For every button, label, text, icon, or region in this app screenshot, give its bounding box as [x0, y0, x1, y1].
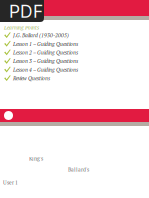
- staticText: Lesson 4 – Guiding Questions: [13, 66, 78, 73]
- staticText: Lesson 3 – Guiding Questions: [13, 58, 78, 65]
- staticText: User 1: [3, 179, 18, 186]
- staticText: Review Questions: [13, 75, 50, 82]
- staticText: King's: [29, 155, 43, 162]
- button[interactable]: Lesson 3 – Guiding Questions: [4, 57, 149, 65]
- button[interactable]: Review Questions: [4, 74, 149, 83]
- button[interactable]: Lesson 4 – Guiding Questions: [4, 65, 149, 74]
- button[interactable]: Lesson 1 – Guiding Questions: [4, 40, 149, 48]
- staticText: Learning Points: [4, 24, 39, 31]
- staticText: PDF: [9, 1, 43, 22]
- button[interactable]: J.G. Ballard (1930-2005): [4, 31, 149, 40]
- staticText: Lesson 1 – Guiding Questions: [13, 40, 78, 47]
- staticText: Ballard's: [68, 166, 89, 173]
- button[interactable]: Lesson 2 – Guiding Questions: [4, 48, 149, 57]
- staticText: Lesson 2 – Guiding Questions: [13, 49, 78, 56]
- staticText: J.G. Ballard (1930-2005): [13, 32, 69, 39]
